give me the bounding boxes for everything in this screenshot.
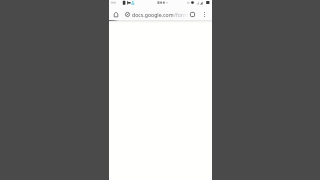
staticText: /forms/d/e [174,11,188,18]
button[interactable]: docs.google.com [122,10,188,19]
button[interactable]: Tabs [188,10,197,19]
staticText: docs.google.com [132,11,174,18]
button[interactable]: More options [200,10,208,18]
button[interactable]: Home [111,10,120,19]
